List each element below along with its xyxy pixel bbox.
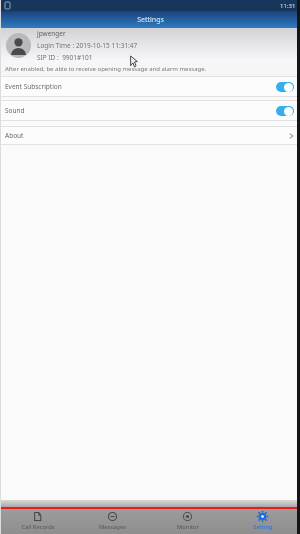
staticText: SIP ID : 9901#101 <box>37 53 93 62</box>
button[interactable]: Toggle <box>276 82 294 92</box>
staticText: Event Subscription <box>5 82 62 91</box>
other: Call Records <box>33 512 42 521</box>
button[interactable]: Messages <box>75 509 150 534</box>
button[interactable]: jpwenger <box>0 28 300 62</box>
staticText: Sound <box>5 106 25 115</box>
staticText: Settings <box>137 15 164 25</box>
button[interactable]: About <box>0 127 300 144</box>
button[interactable]: Event Subscription <box>0 77 300 96</box>
staticText: Setting <box>253 523 273 531</box>
button[interactable]: Toggle <box>276 106 294 116</box>
other: Setting <box>258 512 267 521</box>
staticText: Call Records <box>21 523 55 531</box>
staticText: Messages <box>99 523 126 531</box>
other: Monitor <box>183 512 192 521</box>
staticText: 11:31 <box>280 2 296 10</box>
other: Messages <box>108 512 117 521</box>
staticText: Monitor <box>177 523 199 531</box>
staticText: About <box>5 131 24 140</box>
staticText: After enabled, be able to receive openin… <box>5 65 207 73</box>
button[interactable]: Monitor <box>150 509 225 534</box>
button[interactable]: Setting <box>225 509 300 534</box>
staticText: jpwenger <box>37 29 66 38</box>
button[interactable]: Sound <box>0 101 300 120</box>
button[interactable]: Call Records <box>0 509 75 534</box>
staticText: Login Time : 2019-10-15 11:31:47 <box>37 41 138 50</box>
